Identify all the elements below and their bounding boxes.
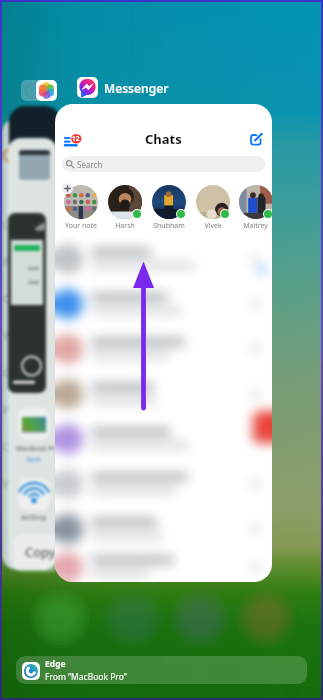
staticText: Your note — [65, 221, 97, 231]
staticText: P — [3, 403, 10, 440]
button[interactable]: Your note — [59, 185, 103, 231]
button[interactable]: Vivek — [191, 185, 235, 231]
staticText: L — [3, 218, 9, 255]
staticText: MacBook Pr — [16, 444, 56, 454]
button[interactable]: Edge — [16, 656, 307, 684]
staticText: Shubham — [153, 221, 185, 231]
button[interactable]: Photos — [36, 80, 57, 101]
staticText: C — [3, 366, 10, 403]
button[interactable]: Shubham — [147, 185, 191, 231]
button[interactable]: Harsh — [103, 185, 147, 231]
staticText: From “MacBook Pro” — [45, 671, 127, 683]
button[interactable]: Maitrey — [235, 185, 272, 231]
staticText: P — [3, 255, 10, 292]
staticText: 12 — [72, 134, 80, 143]
staticText: W — [3, 329, 13, 366]
button[interactable]: Messenger — [77, 77, 98, 98]
staticText: Maitrey — [243, 221, 268, 231]
staticText: C — [3, 292, 10, 329]
staticText: W — [3, 477, 13, 514]
staticText: AirDrop — [21, 513, 47, 523]
button[interactable]: Menu — [64, 132, 83, 148]
staticText: Sent — [26, 455, 41, 465]
staticText: C — [3, 440, 10, 477]
staticText: Vivek — [204, 221, 222, 231]
staticText: Chats — [145, 130, 182, 148]
staticText: Edge — [45, 658, 66, 670]
button[interactable]: New message — [250, 133, 265, 148]
staticText: Harsh — [115, 221, 135, 231]
button[interactable]: Search — [62, 156, 265, 172]
staticText: Messenger — [104, 80, 169, 96]
staticText: Search — [77, 159, 103, 170]
staticText: Copy — [25, 543, 56, 561]
